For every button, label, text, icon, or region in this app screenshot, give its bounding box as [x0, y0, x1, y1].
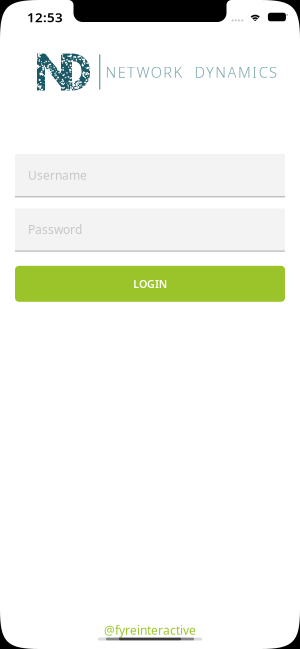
staticText: 12:53	[27, 8, 63, 26]
button[interactable]: Username	[0, 154, 300, 197]
staticText: Username	[28, 167, 87, 183]
staticText: Password	[28, 221, 82, 237]
staticText: LOGIN	[133, 277, 167, 291]
button[interactable]: Password	[0, 208, 300, 252]
button[interactable]: LOGIN	[0, 266, 300, 302]
button[interactable]: @fyreinteractive	[98, 624, 202, 641]
staticText: @fyreinteractive	[104, 622, 196, 638]
staticText: NETWORK DYNAMICS	[105, 62, 277, 82]
